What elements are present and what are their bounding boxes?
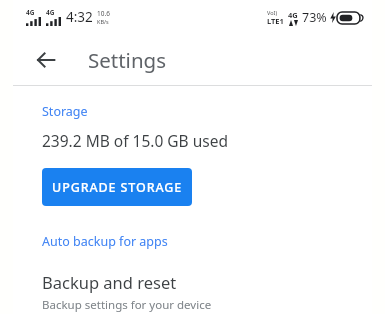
button[interactable]: Auto backup for apps [42,233,168,250]
staticText: UPGRADE STORAGE [52,179,183,196]
staticText: Backup and reset [42,271,177,293]
staticText: Storage [42,103,88,120]
staticText: 239.2 MB of 15.0 GB used [42,130,229,151]
button[interactable]: Storage [42,103,88,120]
staticText: KB/s [97,18,109,25]
staticText: VoI) [267,9,278,16]
staticText: 4:32 [66,8,93,26]
staticText: Auto backup for apps [42,233,168,250]
staticText: Settings [88,46,167,74]
button[interactable]: UPGRADE STORAGE [42,168,192,206]
staticText: 10.6 [97,9,110,18]
button[interactable]: Back [29,43,63,77]
button[interactable]: Backup and reset [42,271,365,313]
staticText: 4G [26,8,35,17]
staticText: 4G [288,10,298,20]
staticText: LTE1 [267,16,284,26]
staticText: 73% [302,9,327,26]
staticText: 4G [46,8,55,17]
staticText: Backup settings for your device [42,297,212,313]
